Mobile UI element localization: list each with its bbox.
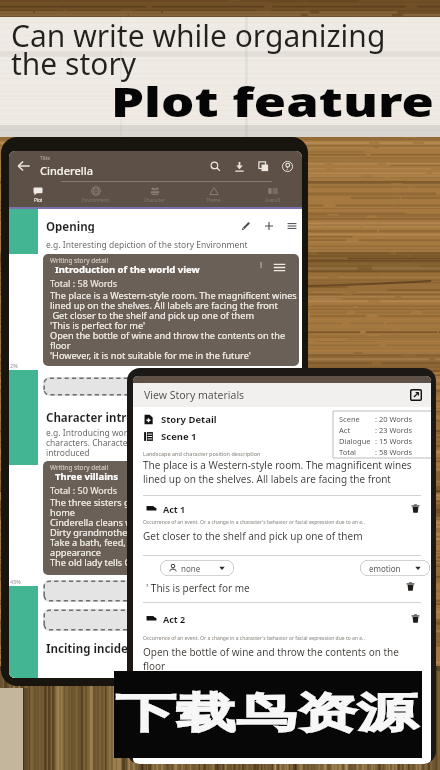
button[interactable]: More options: [257, 468, 265, 476]
button[interactable]: Copy: [258, 161, 269, 172]
button[interactable]: Add story section: [43, 377, 299, 396]
button[interactable]: Open in new window: [410, 389, 422, 401]
staticText: Introduction of the world view: [55, 263, 200, 276]
button[interactable]: Back: [16, 158, 32, 174]
staticText: The three sisters go out of the home Cin…: [50, 496, 180, 569]
staticText: : 23 Words: [375, 425, 413, 435]
staticText: Occurrence of an event. Or a change in a…: [143, 635, 365, 642]
staticText: the story: [11, 43, 137, 84]
staticText: Act 1: [163, 503, 186, 515]
staticText: Three villains: [55, 470, 118, 483]
button[interactable]: Menu: [287, 221, 297, 231]
staticText: Scene 1: [161, 430, 197, 443]
staticText: Opening: [46, 219, 95, 233]
staticText: e.g. Introducing world and main characte…: [46, 427, 175, 458]
button[interactable]: Download: [234, 161, 245, 172]
staticText: Writing story detail: [50, 463, 109, 472]
staticText: 45%: [10, 578, 21, 585]
staticText: View Story materials: [144, 388, 245, 402]
staticText: Character introduction: [46, 410, 178, 424]
button[interactable]: Reorder: [273, 468, 286, 481]
staticText: Scene: [339, 414, 375, 424]
staticText: Landscape and character position descrip…: [143, 450, 261, 457]
staticText: Get closer to the shelf and pick up one …: [143, 529, 363, 543]
staticText: Overall: [265, 197, 280, 203]
staticText: Dialogue: [339, 436, 375, 446]
staticText: Writing story detail: [50, 256, 109, 265]
button[interactable]: Delete: [410, 613, 421, 624]
button[interactable]: Search: [210, 161, 221, 172]
staticText: none: [181, 563, 201, 574]
staticText: Story Detail: [161, 413, 217, 426]
button[interactable]: Story Detail: [143, 412, 253, 426]
staticText: Cinderella: [40, 163, 93, 178]
staticText: Environment: [82, 197, 110, 203]
staticText: : 58 Words: [375, 447, 413, 457]
button[interactable]: Writing story detail: [43, 461, 299, 575]
button[interactable]: Plot: [9, 182, 67, 207]
staticText: Total : 58 Words: [50, 277, 118, 289]
button[interactable]: More options: [257, 261, 265, 269]
staticText: Plot: [34, 197, 43, 203]
button[interactable]: Scene 1: [143, 429, 253, 443]
staticText: ' This is perfect for me: [146, 581, 250, 595]
staticText: Act: [339, 425, 375, 435]
button[interactable]: Delete: [410, 503, 421, 514]
staticText: The place is a Western-style room. The m…: [50, 289, 297, 362]
staticText: Plot feature: [111, 74, 435, 128]
staticText: Title: [40, 155, 50, 162]
staticText: Can write while organizing: [11, 15, 386, 56]
button[interactable]: Theme: [184, 182, 243, 207]
button[interactable]: Writing story detail: [43, 254, 299, 366]
button[interactable]: emotion: [360, 560, 430, 576]
button[interactable]: Add story section: [43, 580, 299, 602]
button[interactable]: Character: [125, 182, 184, 207]
button[interactable]: Edit: [241, 221, 251, 231]
staticText: Total: [339, 447, 375, 457]
button[interactable]: none: [160, 560, 234, 576]
staticText: : 15 Words: [375, 436, 413, 446]
button[interactable]: Help: [282, 161, 293, 172]
staticText: Theme: [206, 197, 221, 203]
staticText: Character: [144, 197, 165, 203]
staticText: Act 2: [163, 613, 186, 625]
staticText: 2%: [10, 362, 18, 369]
staticText: Inciting incident: [46, 641, 141, 657]
staticText: 下载鸟资源: [116, 688, 417, 740]
staticText: : 20 Words: [375, 414, 413, 424]
button[interactable]: Reorder: [273, 261, 286, 274]
staticText: Total : 50 Words: [50, 484, 118, 496]
button[interactable]: Overall: [243, 182, 302, 207]
button[interactable]: Act 1: [146, 502, 421, 515]
button[interactable]: Act 2: [146, 612, 421, 625]
button[interactable]: Add story section: [43, 609, 299, 631]
button[interactable]: Environment: [67, 182, 125, 207]
staticText: The place is a Western-style room. The m…: [143, 458, 412, 486]
button[interactable]: Delete line: [405, 581, 416, 592]
staticText: emotion: [369, 563, 401, 574]
staticText: Occurrence of an event. Or a change in a…: [143, 519, 365, 526]
staticText: e.g. Interesting depiction of the story …: [46, 239, 248, 251]
staticText: Open the bottle of wine and throw the co…: [143, 645, 399, 673]
button[interactable]: Add: [264, 221, 274, 231]
